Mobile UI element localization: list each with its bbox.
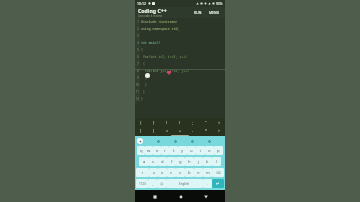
button[interactable]: a xyxy=(139,157,149,166)
button[interactable]: English xyxy=(166,179,203,188)
staticText: f xyxy=(171,159,173,165)
button[interactable]: b xyxy=(185,168,194,177)
staticText: 4 xyxy=(137,41,139,45)
staticText: English xyxy=(179,182,190,186)
staticText: 6 xyxy=(137,55,139,59)
button[interactable]: l xyxy=(212,157,221,166)
button[interactable]: n xyxy=(194,168,203,177)
button[interactable]: g xyxy=(176,157,185,166)
staticText: { xyxy=(140,120,142,125)
staticText: using namespace std; xyxy=(141,27,180,31)
button[interactable]: w xyxy=(145,146,153,155)
button[interactable]: [ xyxy=(135,126,147,134)
staticText: g xyxy=(179,159,182,165)
button[interactable]: - xyxy=(186,126,199,134)
button[interactable]: o xyxy=(205,146,214,155)
staticText: x xyxy=(161,170,164,176)
staticText: 3 xyxy=(137,34,139,38)
button[interactable]: Symbols xyxy=(136,179,148,188)
staticText: for(int j=1; j<=5; j++) xyxy=(145,69,189,73)
staticText: = xyxy=(166,128,168,133)
staticText: 93% xyxy=(216,2,223,6)
button[interactable]: q xyxy=(137,146,145,155)
button[interactable]: Text selection handle xyxy=(145,73,150,78)
button[interactable]: e xyxy=(153,146,161,155)
staticText: y xyxy=(181,148,184,154)
button[interactable]: d xyxy=(158,157,167,166)
button[interactable]: m xyxy=(203,168,212,177)
staticText: l xyxy=(216,159,218,165)
staticText: < xyxy=(218,120,220,125)
staticText: c xyxy=(170,170,173,176)
button[interactable]: j xyxy=(194,157,203,166)
staticText: ⌫ xyxy=(216,171,221,175)
button[interactable]: ; xyxy=(186,118,199,126)
button[interactable]: Home xyxy=(175,191,186,202)
button[interactable]: Back xyxy=(200,191,211,202)
staticText: - xyxy=(192,128,194,133)
staticText: 2 xyxy=(137,27,139,31)
button[interactable]: Comma xyxy=(148,179,157,188)
button[interactable]: Period xyxy=(203,179,212,188)
button[interactable]: + xyxy=(173,126,186,134)
other: Cursor xyxy=(167,71,171,75)
staticText: a xyxy=(143,159,146,165)
staticText: { xyxy=(143,62,145,66)
button[interactable]: k xyxy=(203,157,212,166)
button[interactable]: * xyxy=(199,126,212,134)
staticText: ; xyxy=(192,120,193,125)
staticText: e xyxy=(156,148,159,154)
button[interactable]: p xyxy=(214,146,223,155)
button[interactable]: ( xyxy=(160,118,173,126)
staticText: } xyxy=(145,83,147,87)
staticText: 1 xyxy=(137,20,139,24)
button[interactable]: Emoji xyxy=(157,179,166,188)
button[interactable]: c xyxy=(167,168,176,177)
staticText: 9 xyxy=(137,76,139,80)
button[interactable]: Shift xyxy=(136,168,149,177)
button[interactable]: GIF xyxy=(155,138,161,144)
button[interactable]: Backspace xyxy=(212,168,224,177)
button[interactable]: t xyxy=(169,146,178,155)
button[interactable]: ] xyxy=(147,126,160,134)
button[interactable]: " xyxy=(199,118,212,126)
button[interactable]: Recents xyxy=(149,191,160,202)
staticText: ) xyxy=(179,120,181,125)
staticText: 10:12 xyxy=(137,1,146,6)
staticText: { xyxy=(145,76,147,80)
button[interactable]: settings xyxy=(189,138,195,144)
button[interactable]: y xyxy=(178,146,187,155)
staticText: . xyxy=(207,182,208,186)
button[interactable]: > xyxy=(212,126,225,134)
button[interactable]: s xyxy=(149,157,158,166)
button[interactable]: z xyxy=(149,168,158,177)
button[interactable]: RUN xyxy=(192,9,204,16)
button[interactable]: sticker xyxy=(172,138,178,144)
button[interactable]: x xyxy=(158,168,167,177)
staticText: s xyxy=(152,159,155,165)
button[interactable]: MENU xyxy=(207,9,222,16)
staticText: h xyxy=(188,159,191,165)
button[interactable]: i xyxy=(196,146,205,155)
button[interactable]: < xyxy=(212,118,225,126)
button[interactable]: f xyxy=(167,157,176,166)
button[interactable]: Enter xyxy=(212,179,224,188)
button[interactable]: u xyxy=(187,146,196,155)
button[interactable]: mic xyxy=(206,138,212,144)
staticText: 12 xyxy=(136,97,139,101)
staticText: } xyxy=(153,120,155,125)
button[interactable]: Google assistant xyxy=(137,138,143,144)
staticText: " xyxy=(205,120,207,125)
button[interactable]: ) xyxy=(173,118,186,126)
staticText: z xyxy=(153,170,155,176)
button[interactable]: h xyxy=(185,157,194,166)
staticText: [ xyxy=(140,128,142,133)
button[interactable]: = xyxy=(160,126,173,134)
staticText: ⇧ xyxy=(141,171,144,175)
button[interactable]: } xyxy=(147,118,160,126)
staticText: 7 xyxy=(137,62,139,66)
button[interactable]: { xyxy=(135,118,147,126)
button[interactable]: v xyxy=(176,168,185,177)
staticText: ↵ xyxy=(216,181,220,186)
button[interactable]: r xyxy=(161,146,169,155)
